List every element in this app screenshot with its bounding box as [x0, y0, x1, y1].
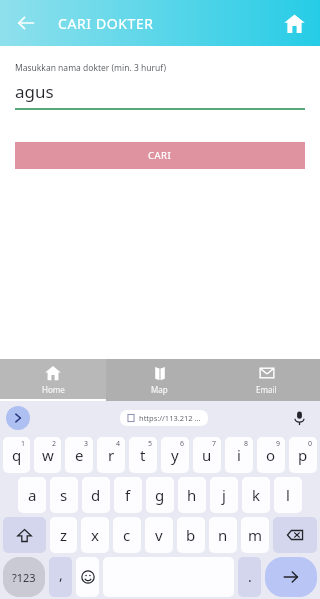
- staticText: i: [237, 445, 241, 465]
- button[interactable]: Expand suggestions: [6, 406, 30, 430]
- button[interactable]: g: [146, 477, 174, 513]
- staticText: 0: [308, 439, 313, 449]
- button[interactable]: o: [257, 437, 285, 473]
- staticText: b: [186, 525, 196, 545]
- button[interactable]: Back: [8, 5, 44, 41]
- button[interactable]: h: [178, 477, 206, 513]
- button[interactable]: x: [81, 517, 109, 553]
- button[interactable]: w: [34, 437, 61, 473]
- button[interactable]: Map: [106, 359, 213, 401]
- staticText: 7: [212, 439, 217, 449]
- staticText: 6: [180, 439, 185, 449]
- button[interactable]: Backspace: [273, 517, 317, 553]
- button[interactable]: d: [82, 477, 110, 513]
- button[interactable]: i: [225, 437, 253, 473]
- button[interactable]: b: [177, 517, 205, 553]
- button[interactable]: f: [114, 477, 142, 513]
- button[interactable]: Home: [276, 5, 312, 41]
- staticText: l: [286, 485, 290, 505]
- staticText: p: [298, 445, 308, 465]
- staticText: 3: [84, 439, 89, 449]
- button[interactable]: j: [210, 477, 238, 513]
- button[interactable]: Email: [213, 359, 320, 401]
- button[interactable]: .: [238, 557, 261, 597]
- button[interactable]: CARI: [15, 142, 305, 169]
- staticText: https://113.212 ...: [139, 413, 201, 423]
- staticText: g: [155, 485, 165, 505]
- staticText: m: [248, 525, 263, 545]
- staticText: a: [28, 485, 37, 505]
- button[interactable]: y: [161, 437, 189, 473]
- staticText: Masukkan nama dokter (min. 3 huruf): [15, 62, 167, 74]
- staticText: CARI DOKTER: [58, 14, 154, 33]
- staticText: agus: [15, 80, 54, 103]
- button[interactable]: t: [129, 437, 157, 473]
- button[interactable]: e: [65, 437, 93, 473]
- staticText: z: [60, 525, 68, 545]
- button[interactable]: z: [50, 517, 77, 553]
- button[interactable]: u: [193, 437, 221, 473]
- staticText: q: [12, 445, 22, 465]
- staticText: s: [60, 485, 68, 505]
- button[interactable]: l: [274, 477, 302, 513]
- staticText: k: [252, 485, 261, 505]
- staticText: t: [140, 445, 146, 465]
- staticText: u: [202, 445, 212, 465]
- button[interactable]: r: [97, 437, 125, 473]
- button[interactable]: ,: [49, 557, 72, 597]
- button[interactable]: c: [113, 517, 141, 553]
- staticText: f: [125, 485, 131, 505]
- button[interactable]: https://113.212 ...: [120, 410, 208, 426]
- staticText: v: [155, 525, 163, 545]
- staticText: n: [218, 525, 228, 545]
- staticText: w: [42, 445, 54, 465]
- button[interactable]: m: [241, 517, 269, 553]
- staticText: Map: [151, 384, 168, 395]
- staticText: ,: [59, 565, 63, 584]
- button[interactable]: a: [18, 477, 46, 513]
- staticText: 9: [276, 439, 281, 449]
- staticText: 2: [52, 439, 57, 449]
- button[interactable]: s: [50, 477, 78, 513]
- staticText: CARI: [148, 149, 172, 162]
- staticText: x: [91, 525, 99, 545]
- staticText: Home: [42, 384, 65, 395]
- button[interactable]: agus: [15, 80, 305, 103]
- staticText: 4: [116, 439, 121, 449]
- staticText: o: [266, 445, 276, 465]
- staticText: ?123: [12, 570, 36, 585]
- staticText: e: [75, 445, 84, 465]
- button[interactable]: Shift: [3, 517, 46, 553]
- staticText: 1: [21, 439, 26, 449]
- staticText: 5: [148, 439, 153, 449]
- staticText: h: [187, 485, 197, 505]
- button[interactable]: k: [242, 477, 270, 513]
- staticText: 8: [244, 439, 249, 449]
- staticText: r: [108, 445, 115, 465]
- button[interactable]: ?123: [3, 557, 45, 597]
- button[interactable]: v: [145, 517, 173, 553]
- button[interactable]: n: [209, 517, 237, 553]
- staticText: c: [123, 525, 131, 545]
- button[interactable]: Enter: [265, 557, 317, 597]
- staticText: d: [91, 485, 101, 505]
- staticText: .: [248, 567, 252, 586]
- button[interactable]: p: [289, 437, 317, 473]
- staticText: Email: [256, 384, 277, 395]
- button[interactable]: Home: [0, 359, 106, 401]
- button[interactable]: Voice input: [286, 405, 312, 431]
- staticText: j: [222, 485, 226, 505]
- staticText: y: [171, 445, 179, 465]
- button[interactable]: q: [3, 437, 30, 473]
- button[interactable]: Emoji: [76, 557, 99, 597]
